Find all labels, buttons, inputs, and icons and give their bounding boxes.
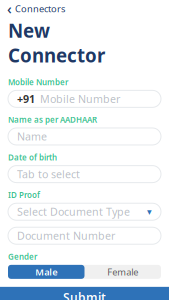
- button[interactable]: Select Document Type: [8, 203, 161, 220]
- button[interactable]: Tab to select: [8, 166, 161, 183]
- staticText: Gender: [8, 251, 37, 262]
- button[interactable]: Name: [8, 128, 161, 145]
- staticText: Date of birth: [8, 152, 57, 163]
- staticText: Male: [35, 266, 57, 278]
- button[interactable]: Submit: [0, 287, 169, 300]
- staticText: Name: [17, 129, 47, 144]
- staticText: Mobile Number: [40, 92, 120, 106]
- staticText: +91: [17, 92, 35, 106]
- staticText: Document Number: [17, 229, 115, 243]
- staticText: Connectors: [15, 2, 65, 15]
- staticText: Tab to select: [17, 167, 80, 181]
- staticText: ▾: [147, 206, 152, 217]
- staticText: Female: [107, 266, 138, 278]
- button[interactable]: +91: [8, 90, 161, 107]
- staticText: Select Document Type: [17, 205, 130, 219]
- staticText: Name as per AADHAAR: [8, 114, 97, 125]
- button[interactable]: Male: [8, 265, 84, 279]
- button[interactable]: Document Number: [8, 227, 161, 244]
- staticText: New Connector: [8, 18, 105, 68]
- staticText: ID Proof: [8, 190, 40, 200]
- staticText: Mobile Number: [8, 77, 68, 87]
- button[interactable]: ‹: [0, 2, 169, 15]
- staticText: ‹: [7, 0, 12, 18]
- button[interactable]: Female: [84, 265, 161, 279]
- staticText: Submit: [63, 289, 106, 300]
